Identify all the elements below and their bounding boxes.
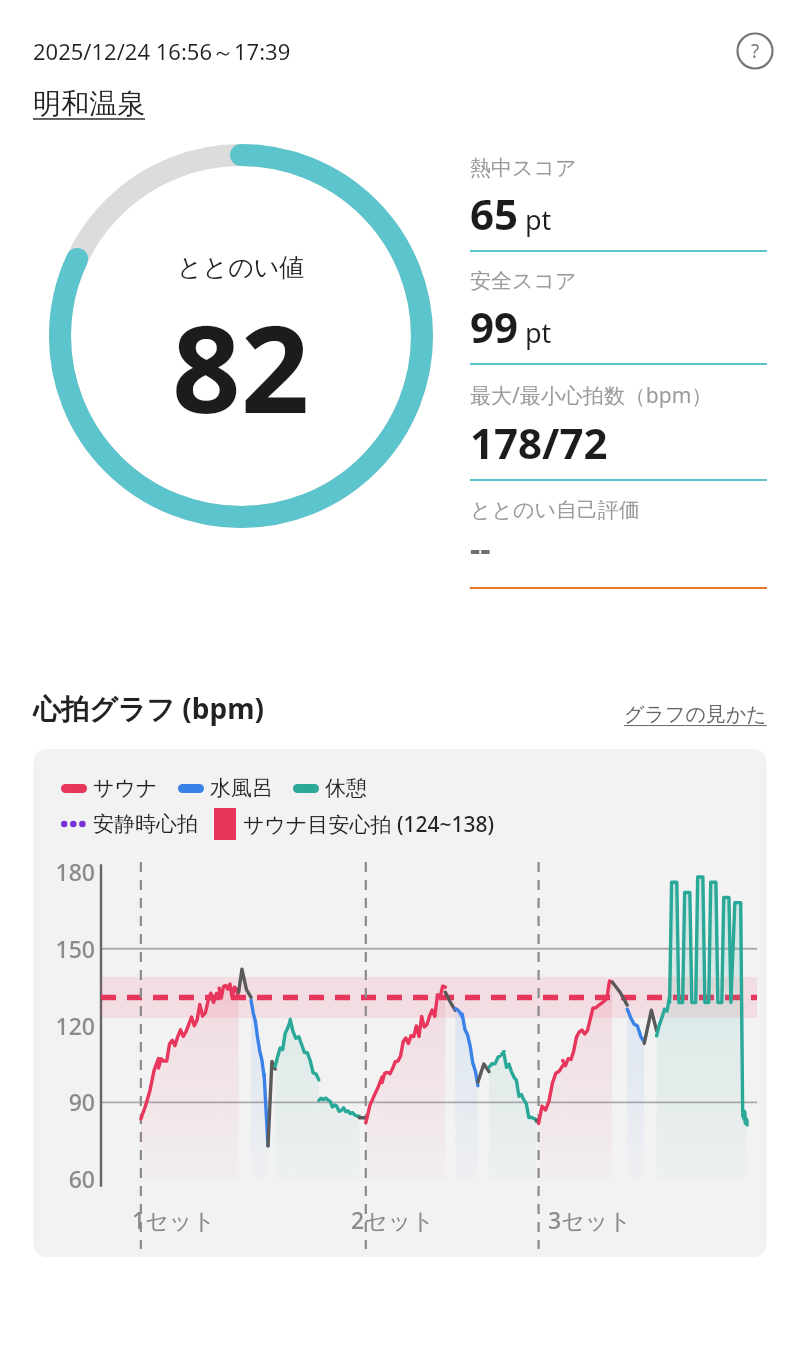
button[interactable]: Help xyxy=(736,32,774,70)
staticText: 最大/最小心拍数（bpm） xyxy=(470,381,713,410)
staticText: 3セット xyxy=(548,1204,632,1235)
staticText: サウナ xyxy=(93,775,158,801)
staticText: SUPER xyxy=(194,762,312,814)
staticText: 120 xyxy=(55,1010,95,1041)
staticText: 99 xyxy=(470,298,519,355)
staticText: ととのい値 xyxy=(177,252,305,283)
staticText: 心拍グラフ (bpm) xyxy=(33,689,264,727)
button[interactable]: 明和温泉 xyxy=(33,86,145,121)
staticText: サウナ目安心拍 (124~138) xyxy=(243,810,495,839)
staticText: 1セット xyxy=(132,1204,216,1235)
staticText: 水風呂 xyxy=(210,775,273,801)
staticText: 2セット xyxy=(351,1204,435,1235)
other: Super rank xyxy=(128,761,182,815)
button[interactable]: ととのい自己評価 xyxy=(470,481,767,589)
staticText: ? xyxy=(751,38,760,64)
staticText: 90 xyxy=(68,1086,95,1117)
button[interactable]: 熱中スコア xyxy=(470,139,767,252)
staticText: 180 xyxy=(55,856,95,887)
staticText: 明和温泉 xyxy=(33,86,145,121)
staticText: pt xyxy=(525,201,552,238)
button[interactable]: グラフの見かた xyxy=(624,702,767,727)
staticText: -- xyxy=(470,527,491,571)
staticText: 安静時心拍 xyxy=(93,811,198,837)
button[interactable]: 最大/最小心拍数（bpm） xyxy=(470,365,767,481)
button[interactable]: Super rank xyxy=(128,759,312,817)
staticText: 82 xyxy=(172,285,310,448)
staticText: 2025/12/24 16:56～17:39 xyxy=(33,36,291,66)
staticText: 休憩 xyxy=(325,775,367,801)
staticText: pt xyxy=(525,314,552,351)
staticText: 178/72 xyxy=(470,414,608,471)
staticText: 65 xyxy=(470,185,519,242)
staticText: 150 xyxy=(55,933,95,964)
button[interactable]: 安全スコア xyxy=(470,252,767,365)
staticText: 安全スコア xyxy=(470,268,577,294)
staticText: グラフの見かた xyxy=(624,702,767,727)
staticText: 熱中スコア xyxy=(470,155,577,181)
staticText: 60 xyxy=(68,1163,95,1194)
staticText: ととのい自己評価 xyxy=(470,497,640,523)
